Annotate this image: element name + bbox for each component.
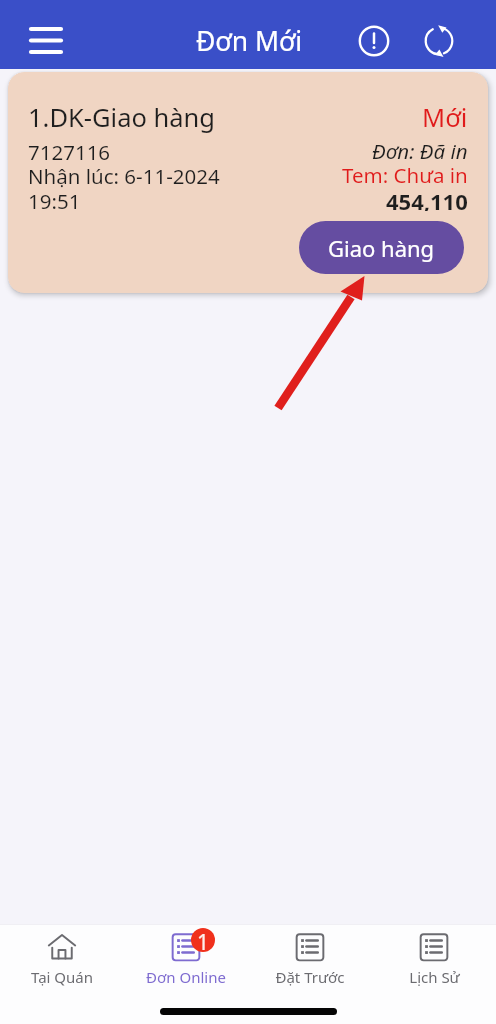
button[interactable]: Đặt Trước [248, 925, 372, 987]
staticText: 1 [197, 928, 210, 952]
button[interactable]: Alert [350, 17, 398, 65]
staticText: Đơn: Đã in [372, 137, 468, 161]
staticText: Giao hàng [328, 233, 435, 263]
staticText: 454,110 [386, 186, 468, 211]
staticText: 1.DK-Giao hàng [28, 100, 216, 135]
button[interactable]: Lịch Sử [372, 925, 496, 987]
button[interactable]: 1.DK-Giao hàng [8, 72, 488, 293]
button[interactable]: Refresh [415, 17, 463, 65]
staticText: Lịch Sử [409, 967, 460, 987]
staticText: Mới [422, 100, 468, 135]
button[interactable]: Menu [22, 17, 70, 65]
staticText: Đơn Mới [196, 23, 303, 59]
staticText: 7127116 Nhận lúc: 6-11-2024 19:51 [28, 138, 220, 215]
button[interactable]: Tại Quán [0, 925, 124, 987]
button[interactable]: Giao hàng [299, 221, 464, 274]
staticText: Tem: Chưa in [342, 161, 468, 186]
staticText: Tại Quán [31, 967, 93, 987]
button[interactable]: 1 [124, 925, 248, 987]
staticText: Đơn Online [146, 967, 226, 987]
staticText: Đặt Trước [275, 967, 345, 987]
